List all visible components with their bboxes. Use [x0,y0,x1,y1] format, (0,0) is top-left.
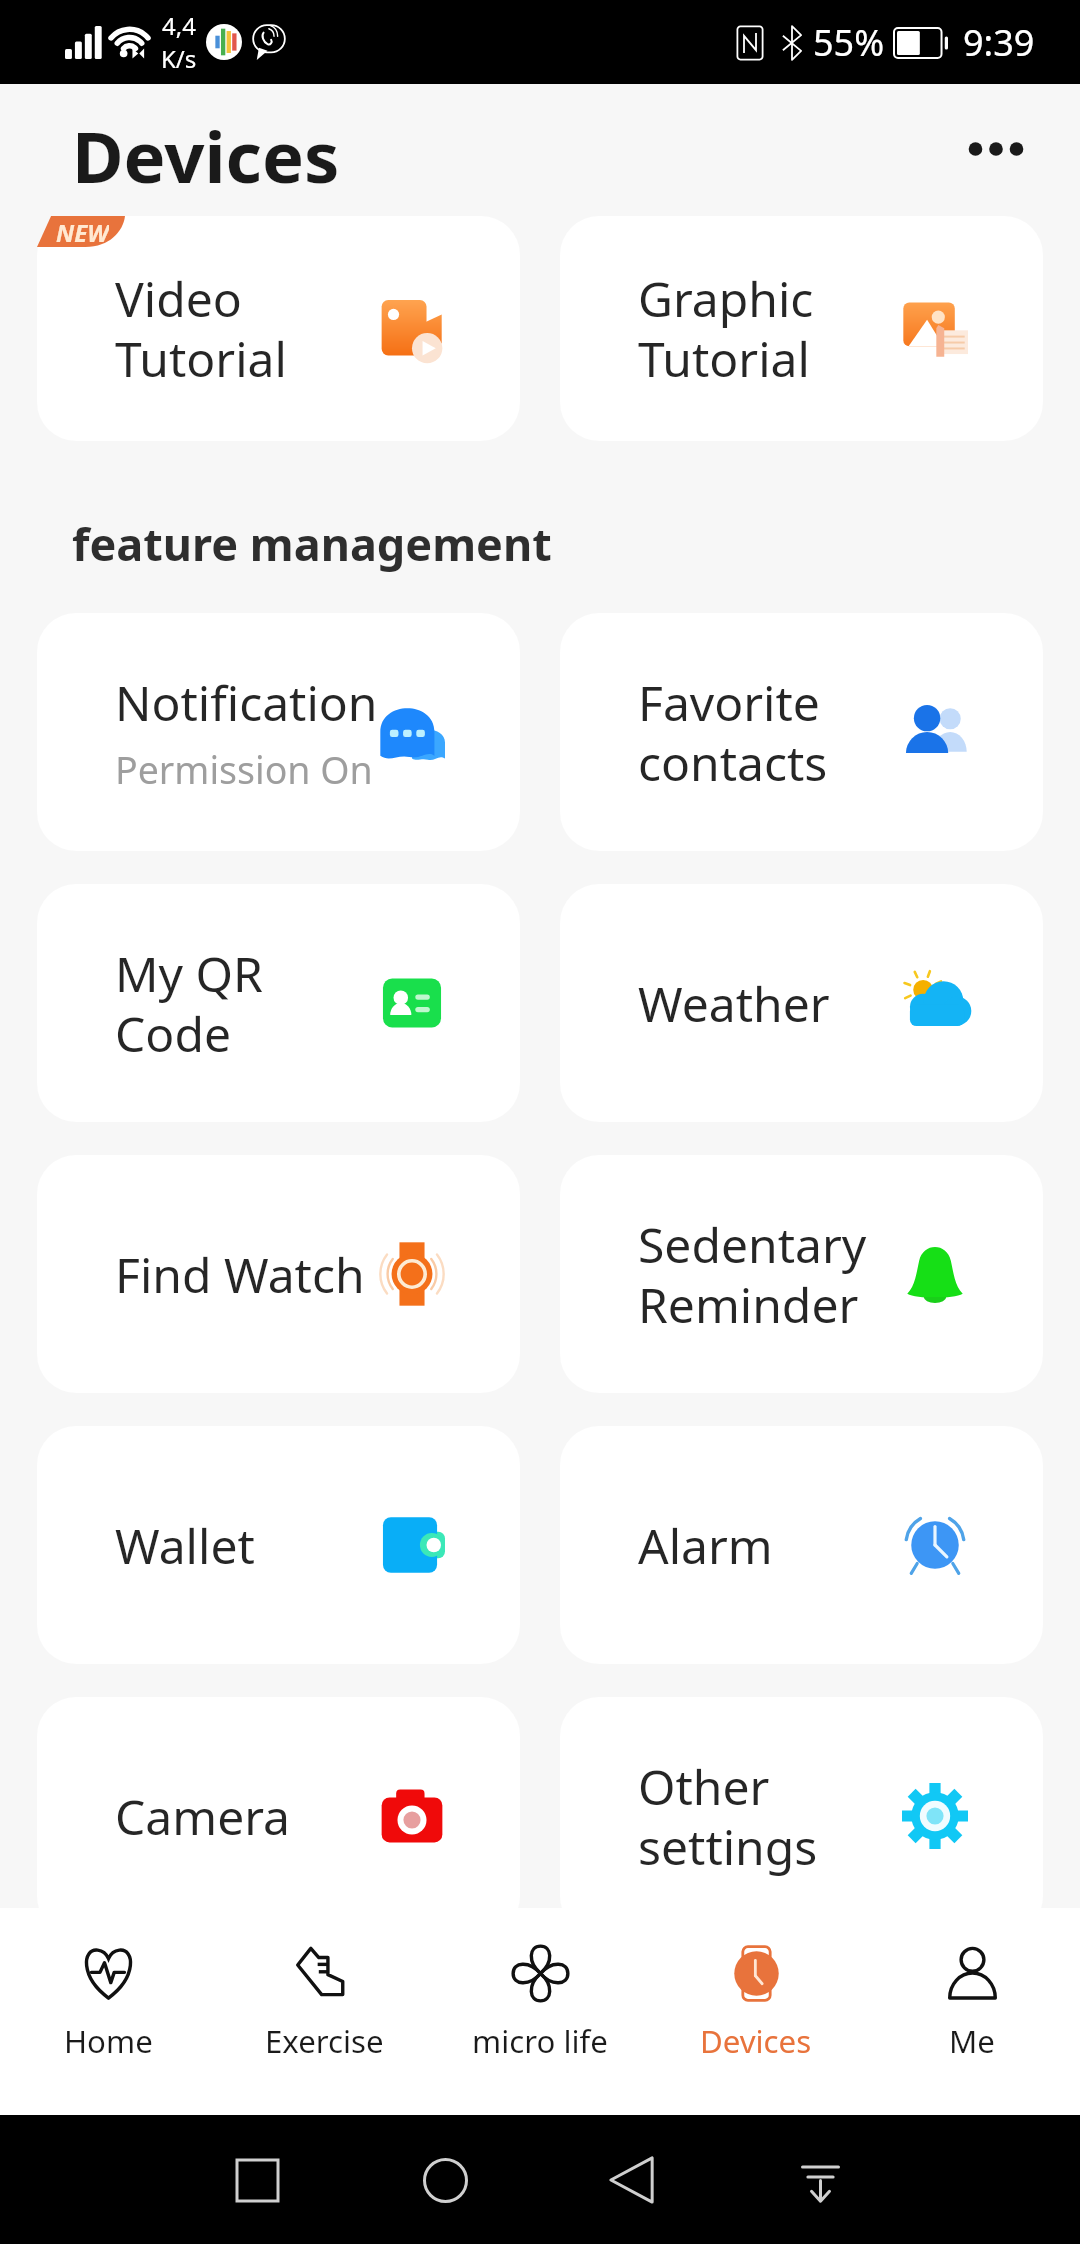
staticText: Exercise [265,2020,384,2062]
button[interactable]: Camera [37,1697,520,1908]
staticText: Permission On [115,744,373,795]
button[interactable]: Graphic Tutorial [560,216,1043,441]
button[interactable]: Notification [37,613,520,851]
button[interactable]: Exercise [216,1908,432,2115]
staticText: 9:39 [963,18,1035,67]
staticText: feature management [72,513,552,574]
button[interactable]: Recents [212,2135,302,2225]
staticText: Alarm [638,1513,773,1578]
staticText: Camera [115,1784,291,1849]
staticText: 55% [813,18,885,67]
staticText: Me [949,2020,995,2062]
staticText: Favorite contacts [638,670,828,795]
button[interactable]: Home [0,1908,216,2115]
staticText: My QR Code [115,941,263,1066]
button[interactable]: Me [864,1908,1080,2115]
staticText: 4,4 [162,9,196,42]
staticText: Devices [72,108,340,204]
button[interactable]: Other settings [560,1697,1043,1908]
staticText: Graphic Tutorial [638,266,814,391]
staticText: Weather [638,971,830,1036]
staticText: micro life [472,2020,608,2062]
button[interactable]: Hide navigation bar [775,2135,865,2225]
button[interactable]: Find Watch [37,1155,520,1393]
button[interactable]: Sedentary Reminder [560,1155,1043,1393]
button[interactable]: micro life [432,1908,648,2115]
button[interactable]: Home [400,2135,490,2225]
button[interactable]: Weather [560,884,1043,1122]
button[interactable]: Favorite contacts [560,613,1043,851]
staticText: Devices [700,2020,812,2062]
staticText: Other settings [638,1754,818,1879]
staticText: Find Watch [115,1242,365,1307]
staticText: Wallet [115,1513,255,1578]
button[interactable]: My QR Code [37,884,520,1122]
staticText: K/s [161,42,197,75]
button[interactable]: Devices [648,1908,864,2115]
button[interactable]: Wallet [37,1426,520,1664]
button[interactable]: More options [954,107,1038,191]
staticText: NEW [56,216,109,247]
staticText: Sedentary Reminder [638,1212,867,1337]
staticText: Video Tutorial [115,266,287,391]
button[interactable]: Video Tutorial [37,216,520,441]
staticText: Notification [115,670,378,735]
button[interactable]: Alarm [560,1426,1043,1664]
button[interactable]: Back [587,2135,677,2225]
staticText: Home [64,2020,153,2062]
